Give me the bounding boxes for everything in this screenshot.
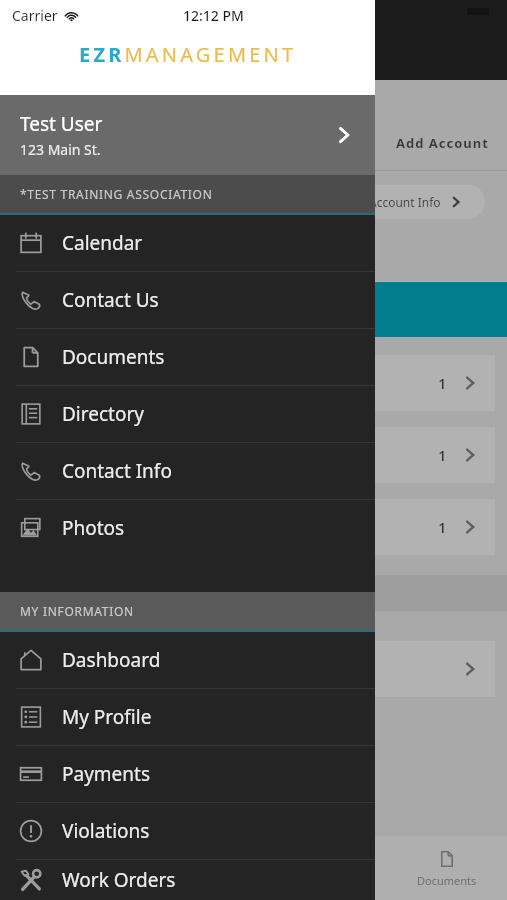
- button[interactable]: Documents: [0, 329, 375, 385]
- button[interactable]: Calendar: [0, 215, 375, 271]
- staticText: Documents: [417, 873, 477, 888]
- staticText: *TEST TRAINING ASSOCIATION: [20, 186, 213, 202]
- button[interactable]: [10, 641, 495, 697]
- staticText: Contact Us: [62, 287, 159, 313]
- staticText: Add Account: [396, 134, 489, 152]
- button[interactable]: Test User: [0, 95, 375, 175]
- staticText: 1: [438, 373, 447, 393]
- button[interactable]: Dashboard: [0, 632, 375, 688]
- button[interactable]: Work Orders: [0, 860, 375, 900]
- staticText: 1: [438, 445, 447, 465]
- button[interactable]: My Profile: [0, 689, 375, 745]
- staticText: Test User: [20, 111, 103, 137]
- staticText: 1: [438, 517, 447, 537]
- staticText: Account Info: [369, 194, 441, 210]
- staticText: EZRMANAGEMENT: [79, 41, 297, 68]
- button[interactable]: Documents: [0, 849, 507, 888]
- button[interactable]: Account Info: [335, 185, 485, 219]
- button[interactable]: 1: [10, 355, 495, 411]
- staticText: MY INFORMATION: [20, 603, 134, 619]
- button[interactable]: Contact Info: [0, 443, 375, 499]
- staticText: 12:12 PM: [183, 6, 244, 25]
- button[interactable]: Contact Us: [0, 272, 375, 328]
- staticText: Photos: [62, 515, 125, 541]
- staticText: Payments: [62, 761, 151, 787]
- button[interactable]: 1: [10, 499, 495, 555]
- staticText: Carrier: [12, 6, 58, 25]
- button[interactable]: Photos: [0, 500, 375, 556]
- button[interactable]: Violations: [0, 803, 375, 859]
- staticText: Calendar: [62, 230, 143, 256]
- staticText: Documents: [62, 344, 165, 370]
- staticText: Contact Info: [62, 458, 172, 484]
- button[interactable]: Directory: [0, 386, 375, 442]
- staticText: My Profile: [62, 704, 152, 730]
- staticText: Violations: [62, 818, 150, 844]
- staticText: 123 Main St.: [20, 140, 101, 159]
- staticText: Dashboard: [62, 647, 161, 673]
- staticText: Directory: [62, 401, 144, 427]
- staticText: Work Orders: [62, 867, 176, 893]
- button[interactable]: 1: [10, 427, 495, 483]
- button[interactable]: Payments: [0, 746, 375, 802]
